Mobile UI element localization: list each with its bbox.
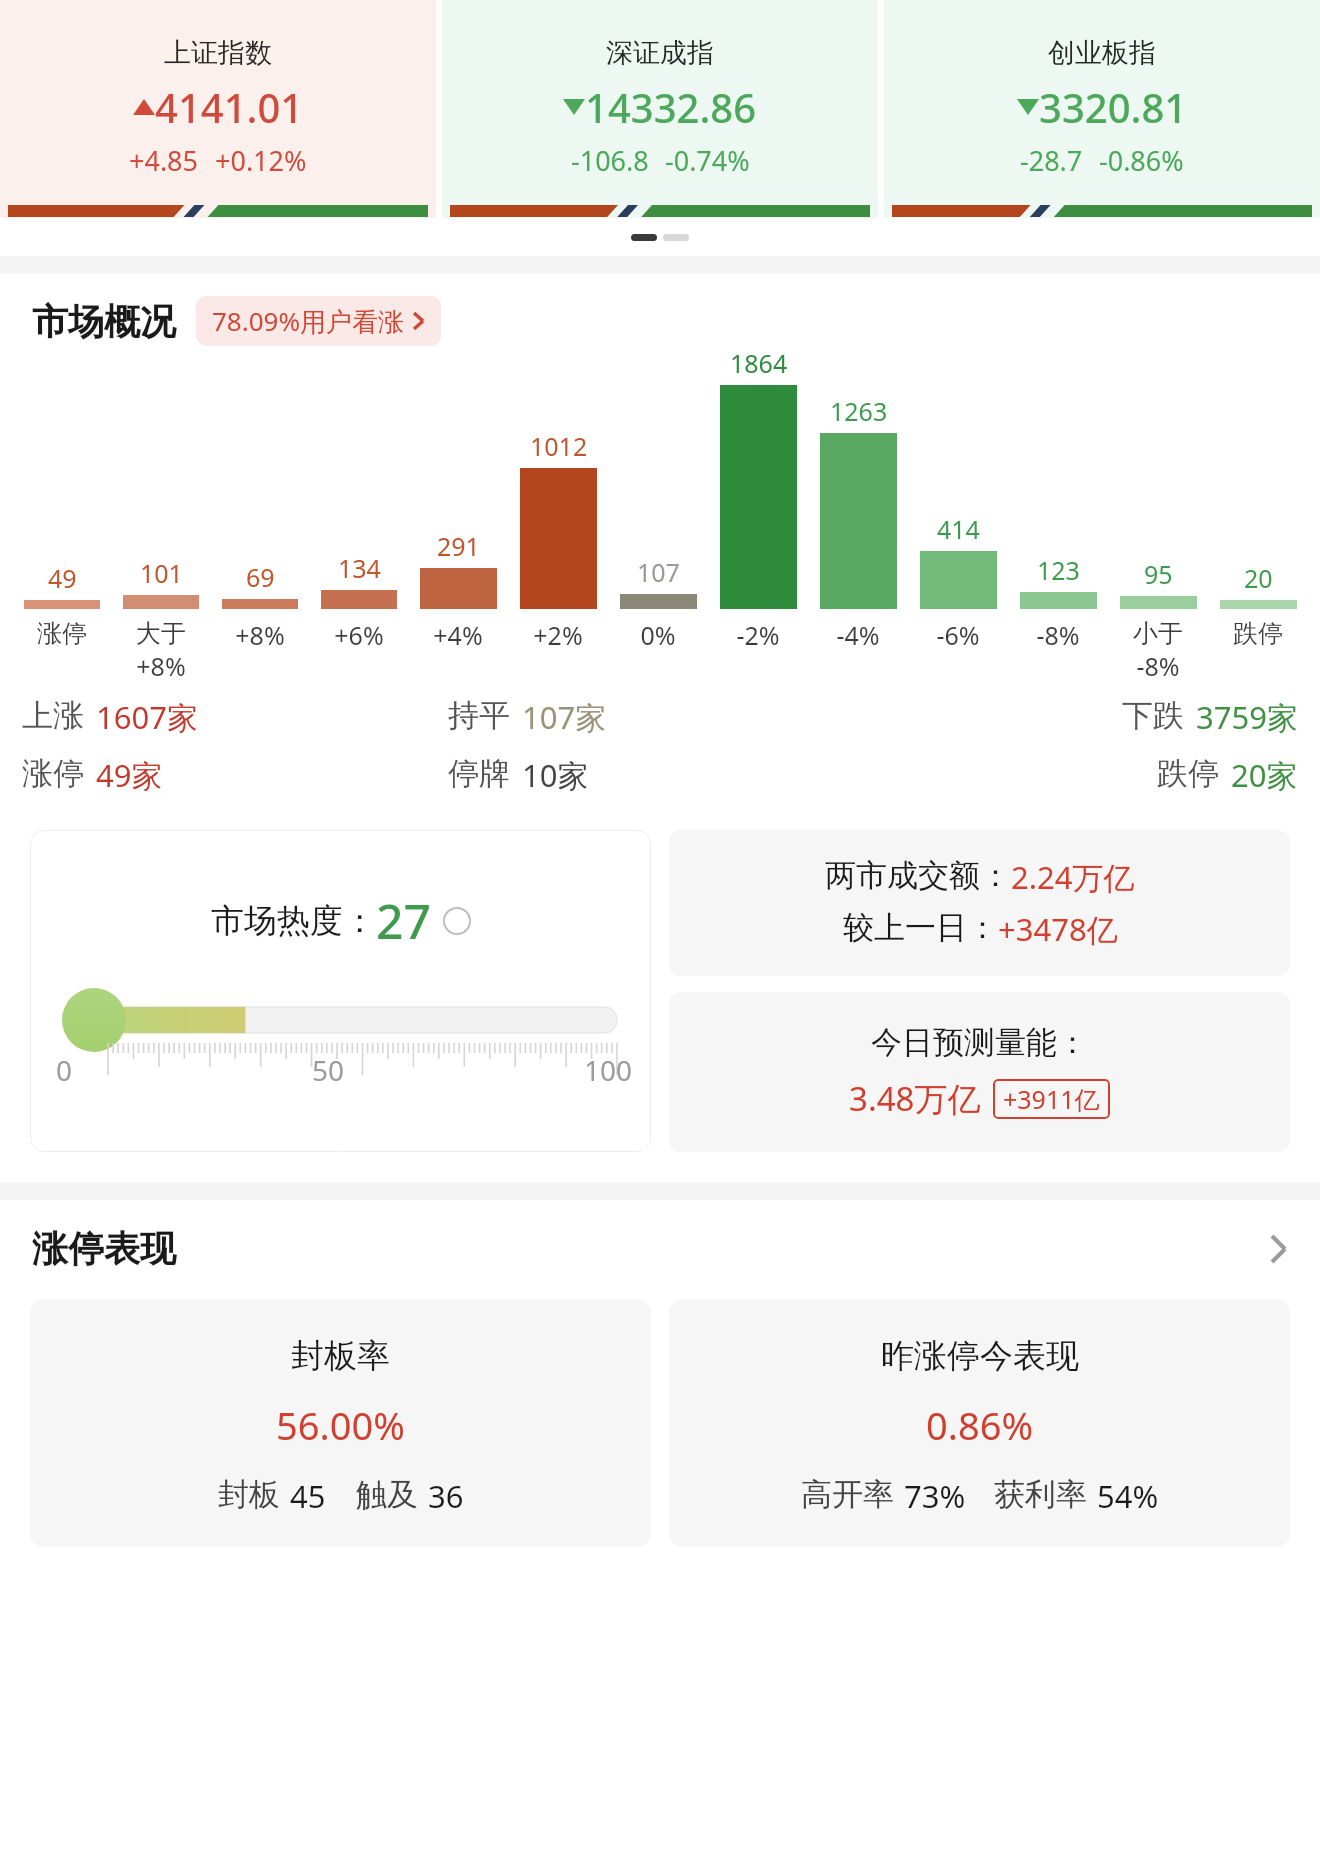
button[interactable]: 创业板指 bbox=[884, 0, 1320, 218]
staticText: 36 bbox=[428, 1475, 464, 1517]
staticText: 101 bbox=[140, 556, 183, 590]
staticText: 跌停 bbox=[1157, 754, 1219, 793]
staticText: 27 bbox=[376, 888, 431, 953]
staticText: -4% bbox=[836, 618, 880, 652]
staticText: 跌停 bbox=[1233, 618, 1283, 649]
staticText: 50 bbox=[312, 1051, 345, 1089]
staticText: 封板率 bbox=[291, 1335, 390, 1377]
button[interactable]: 昨涨停今表现 bbox=[669, 1299, 1290, 1547]
staticText: +8% bbox=[235, 618, 285, 652]
staticText: 2.24万亿 bbox=[1011, 856, 1135, 898]
button[interactable]: 78.09%用户看涨 bbox=[196, 296, 441, 346]
staticText: +8% bbox=[136, 649, 186, 678]
staticText: 触及 bbox=[356, 1475, 418, 1514]
button[interactable]: 今日预测量能： bbox=[669, 992, 1290, 1152]
staticText: -28.7 bbox=[1020, 142, 1083, 179]
staticText: -8% bbox=[1036, 618, 1080, 652]
staticText: 49 bbox=[48, 561, 77, 595]
staticText: +3478亿 bbox=[998, 908, 1118, 950]
staticText: 昨涨停今表现 bbox=[881, 1335, 1079, 1377]
staticText: 上涨 bbox=[22, 696, 84, 735]
staticText: 小于 bbox=[1133, 618, 1183, 649]
staticText: 涨停表现 bbox=[32, 1226, 176, 1271]
staticText: -8% bbox=[1136, 649, 1180, 678]
staticText: 78.09%用户看涨 bbox=[212, 303, 405, 339]
button[interactable]: 深证成指 bbox=[442, 0, 878, 218]
staticText: +0.12% bbox=[215, 142, 307, 179]
staticText: 大于 bbox=[136, 618, 186, 649]
staticText: 停牌 bbox=[448, 754, 510, 793]
button[interactable]: 上证指数 bbox=[0, 0, 436, 218]
other: More bbox=[1270, 1233, 1288, 1265]
staticText: 深证成指 bbox=[606, 36, 714, 70]
staticText: 69 bbox=[246, 560, 275, 594]
staticText: 较上一日： bbox=[843, 908, 998, 947]
staticText: 封板 bbox=[218, 1475, 280, 1514]
staticText: 134 bbox=[338, 551, 381, 585]
staticText: 54% bbox=[1097, 1475, 1159, 1517]
staticText: 10家 bbox=[522, 754, 589, 796]
staticText: 1607家 bbox=[96, 696, 198, 738]
staticText: -0.86% bbox=[1099, 142, 1184, 179]
staticText: 涨停 bbox=[22, 754, 84, 793]
button[interactable]: 涨停表现 bbox=[0, 1226, 1320, 1271]
staticText: 73% bbox=[904, 1475, 966, 1517]
staticText: 20家 bbox=[1231, 754, 1298, 796]
staticText: 两市成交额： bbox=[825, 856, 1011, 895]
staticText: 今日预测量能： bbox=[871, 1023, 1088, 1062]
staticText: -6% bbox=[936, 618, 980, 652]
staticText: 0% bbox=[640, 618, 676, 652]
button[interactable]: 两市成交额： bbox=[669, 830, 1290, 976]
staticText: 0.86% bbox=[926, 1399, 1033, 1451]
staticText: +4% bbox=[433, 618, 483, 652]
staticText: +6% bbox=[334, 618, 384, 652]
staticText: 414 bbox=[937, 512, 980, 546]
staticText: 56.00% bbox=[276, 1399, 405, 1451]
staticText: 高开率 bbox=[801, 1475, 894, 1514]
staticText: 获利率 bbox=[994, 1475, 1087, 1514]
staticText: 1263 bbox=[830, 394, 888, 428]
staticText: -2% bbox=[736, 618, 780, 652]
staticText: 3.48万亿 bbox=[849, 1076, 981, 1121]
staticText: 1012 bbox=[530, 429, 588, 463]
staticText: 创业板指 bbox=[1048, 36, 1156, 70]
staticText: 45 bbox=[290, 1475, 326, 1517]
staticText: +2% bbox=[533, 618, 583, 652]
staticText: 1864 bbox=[730, 346, 788, 380]
staticText: +3911亿 bbox=[1003, 1082, 1100, 1116]
button[interactable]: 市场热度： bbox=[30, 830, 651, 1152]
staticText: 市场概况 bbox=[32, 299, 176, 344]
staticText: 下跌 bbox=[1122, 696, 1184, 735]
staticText: 100 bbox=[584, 1051, 633, 1089]
staticText: 4141.01 bbox=[155, 80, 304, 134]
staticText: 上证指数 bbox=[164, 36, 272, 70]
staticText: 市场热度： bbox=[211, 900, 376, 942]
staticText: 0 bbox=[56, 1051, 73, 1089]
staticText: -106.8 bbox=[571, 142, 649, 179]
staticText: 123 bbox=[1037, 553, 1080, 587]
staticText: -0.74% bbox=[665, 142, 750, 179]
staticText: 3320.81 bbox=[1039, 80, 1188, 134]
staticText: 107家 bbox=[522, 696, 607, 738]
staticText: 持平 bbox=[448, 696, 510, 735]
staticText: 95 bbox=[1144, 557, 1173, 591]
staticText: 20 bbox=[1244, 561, 1273, 595]
staticText: 291 bbox=[437, 529, 480, 563]
staticText: 涨停 bbox=[37, 618, 87, 649]
staticText: 14332.86 bbox=[585, 80, 757, 134]
staticText: +4.85 bbox=[129, 142, 199, 179]
staticText: 49家 bbox=[96, 754, 163, 796]
button[interactable]: 封板率 bbox=[30, 1299, 651, 1547]
staticText: 3759家 bbox=[1196, 696, 1298, 738]
staticText: 107 bbox=[637, 555, 680, 589]
